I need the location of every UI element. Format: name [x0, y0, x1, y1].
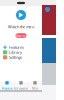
staticText: Get Started: [15, 28, 26, 43]
staticText: Features: [9, 45, 24, 50]
button[interactable]: Browse: [14, 81, 28, 91]
staticText: Me: [32, 85, 38, 91]
staticText: Settings: [9, 55, 22, 60]
staticText: Browse: [14, 85, 28, 91]
staticText: Home: [1, 85, 12, 91]
button[interactable]: Features: [0, 45, 42, 50]
staticText: Library: [9, 50, 22, 55]
button[interactable]: Settings: [0, 55, 42, 60]
button[interactable]: Home: [0, 81, 14, 91]
button[interactable]: Me: [28, 81, 42, 91]
button[interactable]: Get Started: [15, 33, 26, 38]
staticText: Watch the intro: [8, 24, 34, 29]
button[interactable]: Library: [0, 50, 42, 55]
